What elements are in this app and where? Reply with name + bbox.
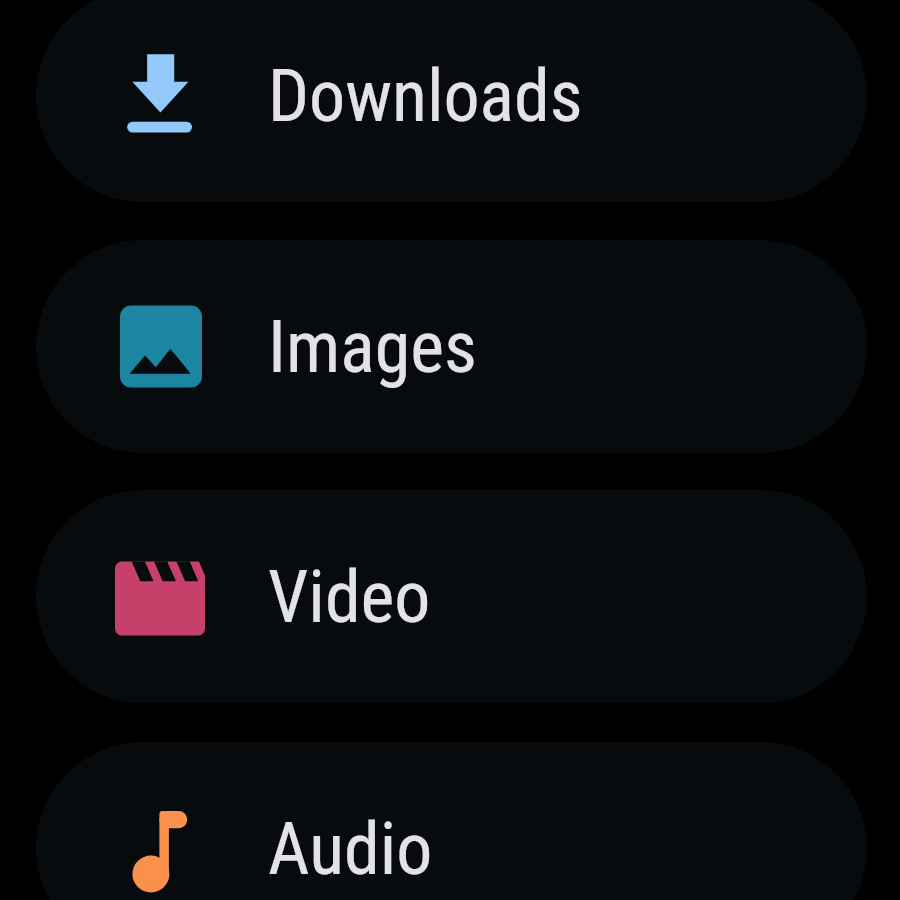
staticText: Downloads xyxy=(268,54,583,138)
button[interactable]: Images xyxy=(36,240,867,453)
staticText: Images xyxy=(268,305,477,389)
staticText: Audio xyxy=(268,807,433,891)
button[interactable]: Video xyxy=(36,490,867,703)
button[interactable]: Downloads xyxy=(36,0,867,202)
staticText: Video xyxy=(268,555,431,639)
button[interactable]: Audio xyxy=(36,742,867,900)
